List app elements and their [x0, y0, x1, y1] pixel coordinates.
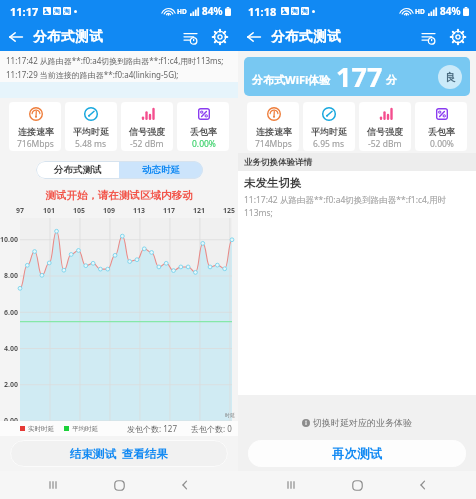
staticText: 分布式WiFi体验	[252, 72, 331, 87]
staticText: 发包个数: 127	[127, 423, 177, 434]
staticText: 117	[163, 206, 176, 216]
button[interactable]: 丢包率	[415, 102, 467, 151]
staticText: 未发生切换	[244, 176, 302, 190]
button[interactable]: Recents	[40, 472, 66, 498]
staticText: 丢包率	[428, 126, 455, 137]
staticText: 淘	[54, 8, 60, 15]
button[interactable]: 分布式测试	[36, 161, 119, 179]
staticText: 平均时延	[72, 425, 98, 433]
staticText: -52 dBm	[368, 138, 402, 150]
staticText: -52 dBm	[130, 138, 164, 150]
staticText: 109	[103, 206, 116, 216]
staticText: 6.95 ms	[313, 138, 345, 150]
staticText: 信号强度	[129, 126, 165, 137]
staticText: 4.00	[4, 344, 18, 354]
staticText: 8.00	[4, 271, 18, 281]
staticText: 分布式测试	[54, 164, 102, 176]
staticText: 淘	[64, 8, 70, 15]
staticText: 丢包个数: 0	[191, 423, 232, 434]
button[interactable]: Back	[3, 24, 29, 50]
button[interactable]: Back	[241, 24, 267, 50]
staticText: 信号强度	[367, 126, 403, 137]
staticText: 716Mbps	[17, 138, 54, 150]
staticText: 84%	[440, 4, 461, 18]
staticText: 11:17:42 从路由器**:f0:a4切换到路由器**:f1:c4,用时11…	[6, 55, 224, 66]
button[interactable]: History	[176, 23, 204, 51]
staticText: 分	[386, 73, 397, 87]
button[interactable]: 连接速率	[247, 102, 299, 151]
staticText: 业务切换体验详情	[244, 157, 312, 168]
staticText: HD	[177, 7, 187, 16]
staticText: 连接速率	[18, 126, 54, 137]
staticText: 121	[193, 206, 206, 216]
staticText: 113	[133, 206, 146, 216]
staticText: 714Mbps	[255, 138, 292, 150]
staticText: 分布式测试	[33, 28, 103, 45]
button[interactable]: 分布式WiFi体验	[244, 57, 470, 96]
staticText: 105	[73, 206, 86, 216]
staticText: 125	[223, 206, 236, 216]
staticText: 再次测试	[332, 446, 382, 462]
staticText: 丢包率	[190, 126, 217, 137]
staticText: 11:17:42 从路由器**:f0:a4切换到路由器**:f1:c4,用时11…	[244, 194, 470, 218]
staticText: 5.48 ms	[75, 138, 107, 150]
staticText: 84%	[202, 4, 223, 18]
button[interactable]: Back	[410, 472, 436, 498]
staticText: 2.00	[4, 380, 18, 390]
staticText: 177	[336, 58, 383, 95]
button[interactable]: Home	[106, 472, 132, 498]
staticText: 分布式测试	[271, 28, 341, 45]
button[interactable]: 平均时延	[65, 102, 117, 151]
button[interactable]: History	[414, 23, 442, 51]
staticText: 0.00	[4, 416, 18, 426]
staticText: 11:18	[248, 4, 277, 19]
staticText: 连接速率	[256, 126, 292, 137]
staticText: 切换时延对应的业务体验	[313, 417, 412, 428]
staticText: 10.00	[0, 235, 18, 245]
staticText: 平均时延	[311, 126, 347, 137]
staticText: 动态时延	[142, 164, 180, 176]
staticText: 0.00%	[192, 138, 216, 150]
staticText: 6.00	[4, 308, 18, 318]
staticText: 0.00%	[430, 138, 454, 150]
staticText: 101	[43, 206, 56, 216]
staticText: 淘	[302, 8, 308, 15]
button[interactable]: 动态时延	[119, 161, 203, 179]
button[interactable]: 再次测试	[248, 440, 466, 467]
staticText: 淘	[292, 8, 298, 15]
staticText: 时延	[225, 412, 235, 418]
button[interactable]: Settings	[444, 23, 472, 51]
button[interactable]: Home	[344, 472, 370, 498]
staticText: 良	[445, 71, 456, 84]
button[interactable]: Recents	[278, 472, 304, 498]
button[interactable]: 结束测试 查看结果	[10, 440, 228, 467]
staticText: 结束测试 查看结果	[70, 446, 168, 462]
button[interactable]: 连接速率	[9, 102, 61, 151]
staticText: 97	[16, 206, 25, 216]
staticText: 11:17	[10, 4, 39, 19]
button[interactable]: 信号强度	[359, 102, 411, 151]
staticText: 11:17:29 当前连接的路由器**:f0:a4(linking-5G);	[6, 69, 179, 80]
staticText: 实时时延	[28, 425, 54, 433]
button[interactable]: 丢包率	[177, 102, 229, 151]
staticText: 平均时延	[73, 126, 109, 137]
button[interactable]: Back	[172, 472, 198, 498]
button[interactable]: Settings	[206, 23, 234, 51]
staticText: 测试开始，请在测试区域内移动	[0, 189, 238, 202]
button[interactable]: 信号强度	[121, 102, 173, 151]
staticText: HD	[415, 7, 425, 16]
button[interactable]: 平均时延	[303, 102, 355, 151]
